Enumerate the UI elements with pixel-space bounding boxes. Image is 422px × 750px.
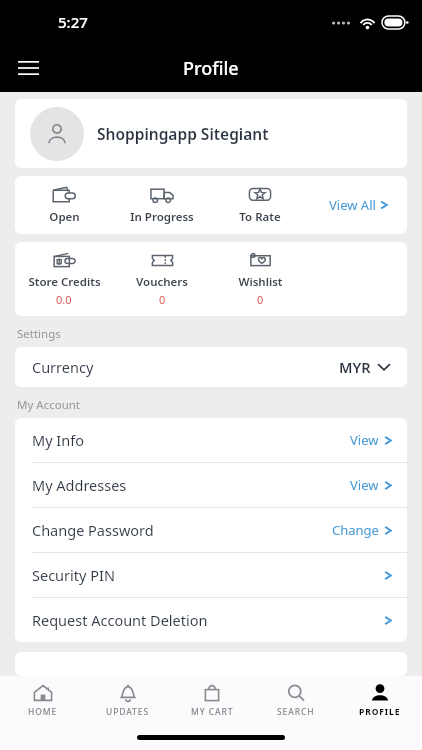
staticText: Request Account Deletion [32, 610, 208, 630]
staticText: 5:27 [58, 12, 88, 32]
button[interactable]: Change Password [15, 508, 407, 552]
staticText: 0 [257, 292, 264, 307]
button[interactable]: Security PIN [15, 553, 407, 597]
button[interactable]: In Progress [113, 176, 211, 234]
button[interactable]: SEARCH [254, 676, 338, 724]
button[interactable]: Currency [15, 347, 407, 387]
staticText: My Addresses [32, 475, 127, 495]
button[interactable]: Shoppingapp Sitegiant [15, 99, 407, 168]
staticText: Vouchers [136, 274, 188, 290]
staticText: 0.0 [56, 292, 72, 307]
staticText: View [350, 431, 379, 449]
staticText: Change [332, 521, 379, 539]
staticText: HOME [28, 706, 58, 718]
staticText: SEARCH [277, 706, 315, 718]
button[interactable]: View All [309, 176, 407, 234]
button[interactable]: My Info [15, 418, 407, 462]
button[interactable]: HOME [0, 676, 85, 724]
button[interactable]: To Rate [211, 176, 309, 234]
staticText: Store Credits [28, 274, 101, 290]
staticText: View [350, 476, 379, 494]
staticText: To Rate [239, 209, 281, 225]
staticText: In Progress [130, 209, 194, 225]
button[interactable]: Open navigation menu [8, 48, 48, 88]
staticText: Currency [32, 357, 94, 377]
staticText: UPDATES [106, 706, 149, 718]
staticText: Change Password [32, 520, 154, 540]
staticText: Profile [183, 56, 239, 81]
button[interactable]: Vouchers [113, 242, 211, 316]
staticText: Wishlist [238, 274, 283, 290]
button[interactable]: MY CART [170, 676, 254, 724]
staticText: 0 [159, 292, 166, 307]
staticText: My Account [17, 397, 80, 413]
staticText: Security PIN [32, 565, 115, 585]
button[interactable]: Wishlist [211, 242, 309, 316]
staticText: PROFILE [359, 706, 401, 718]
staticText: MY CART [191, 706, 234, 718]
button[interactable]: UPDATES [85, 676, 170, 724]
button[interactable]: PROFILE [338, 676, 422, 724]
button[interactable]: Request Account Deletion [15, 598, 407, 642]
staticText: Settings [17, 326, 61, 342]
button[interactable]: Open [15, 176, 113, 234]
staticText: Open [49, 209, 80, 225]
staticText: Shoppingapp Sitegiant [97, 123, 269, 144]
button[interactable]: My Addresses [15, 463, 407, 507]
staticText: View All [329, 196, 376, 214]
button[interactable]: Store Credits [15, 242, 113, 316]
staticText: MYR [339, 357, 371, 377]
staticText: My Info [32, 430, 84, 450]
